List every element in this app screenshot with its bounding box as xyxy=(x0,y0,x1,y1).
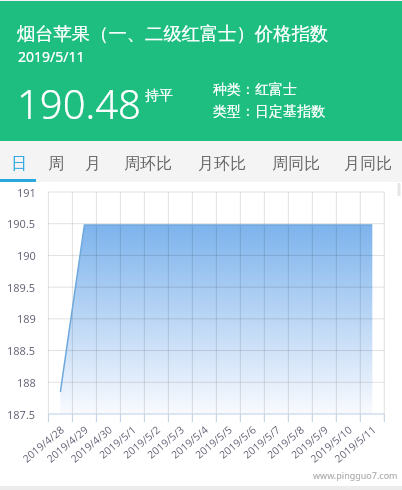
staticText: 周环比 xyxy=(124,154,172,174)
staticText: 日 xyxy=(11,154,27,174)
staticText: 周同比 xyxy=(272,154,320,174)
staticText: 周 xyxy=(48,154,64,174)
button[interactable]: 周 xyxy=(37,141,74,182)
button[interactable]: 月 xyxy=(74,141,111,182)
button[interactable]: 日 xyxy=(0,141,37,182)
button[interactable] xyxy=(0,182,402,486)
staticText: 类型：日定基指数 xyxy=(213,103,325,121)
staticText: 月 xyxy=(85,154,101,174)
staticText: 月同比 xyxy=(344,154,392,174)
staticText: 持平 xyxy=(145,87,173,105)
button[interactable]: 月环比 xyxy=(185,141,259,182)
button[interactable]: 月同比 xyxy=(333,141,402,182)
staticText: 2019/5/11 xyxy=(18,47,85,66)
staticText: 月环比 xyxy=(198,154,246,174)
staticText: 烟台苹果（一、二级红富士）价格指数 xyxy=(17,22,329,45)
staticText: 190.48 xyxy=(17,76,141,130)
button[interactable]: 周环比 xyxy=(111,141,185,182)
button[interactable]: 周同比 xyxy=(259,141,333,182)
staticText: 种类：红富士 xyxy=(213,81,297,99)
button[interactable]: 烟台苹果（一、二级红富士）价格指数 xyxy=(0,1,402,141)
